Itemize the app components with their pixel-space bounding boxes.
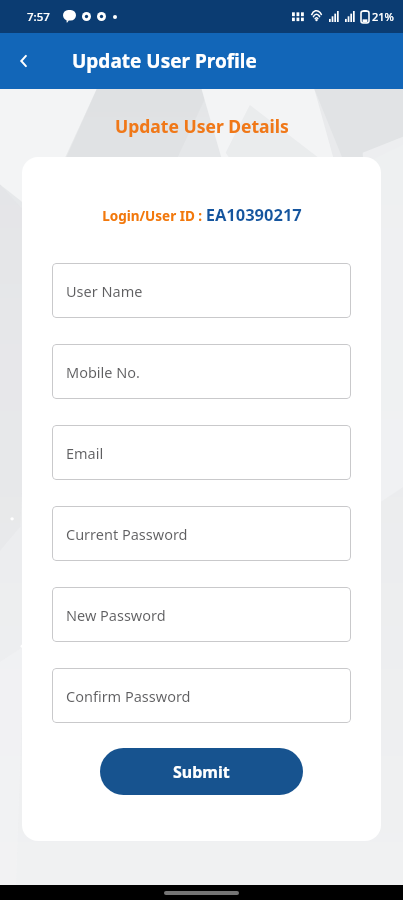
staticText: Update User Profile (72, 48, 257, 74)
staticText: Submit (173, 761, 230, 783)
button[interactable]: New Password (52, 587, 351, 642)
button[interactable]: Email (52, 425, 351, 480)
staticText: Current Password (66, 524, 188, 544)
button[interactable]: Mobile No. (52, 344, 351, 399)
staticText: 7:57 (27, 9, 50, 25)
staticText: User Name (66, 281, 143, 301)
staticText: 21% (372, 9, 394, 24)
button[interactable]: Back (0, 37, 48, 85)
button[interactable]: Current Password (52, 506, 351, 561)
button[interactable]: Confirm Password (52, 668, 351, 723)
button[interactable]: Submit (100, 748, 303, 795)
staticText: Mobile No. (66, 362, 140, 382)
staticText: Update User Details (115, 114, 289, 138)
staticText: Email (66, 443, 104, 463)
staticText: New Password (66, 605, 166, 625)
button[interactable]: User Name (52, 263, 351, 318)
staticText: Login/User ID : EA10390217 (102, 203, 302, 225)
staticText: Confirm Password (66, 686, 191, 706)
